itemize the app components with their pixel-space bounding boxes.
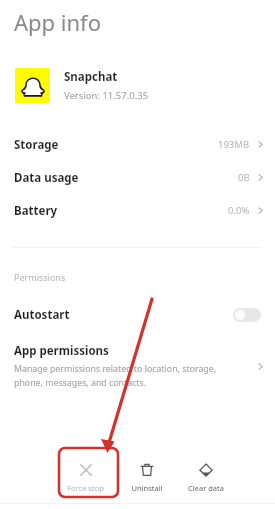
other: Force stop [78, 462, 94, 478]
staticText: App info [14, 7, 101, 37]
button[interactable]: Storage [0, 128, 275, 161]
staticText: App permissions [14, 343, 109, 359]
staticText: Clear data [188, 483, 224, 493]
staticText: Snapchat [64, 69, 118, 85]
staticText: Uninstall [131, 483, 163, 493]
staticText: Manage permissions related to location, … [14, 363, 217, 375]
staticText: Autostart [14, 307, 70, 323]
button[interactable]: Force stop [63, 460, 108, 495]
staticText: phone, messages, and contacts. [14, 377, 147, 389]
staticText: Version: 11.57.0.35 [64, 89, 149, 102]
other: Clear data [198, 462, 214, 478]
staticText: 0B [238, 171, 250, 184]
button[interactable]: Battery [0, 194, 275, 227]
staticText: Force stop [67, 483, 104, 493]
staticText: Data usage [14, 170, 79, 186]
button[interactable]: Autostart [0, 300, 275, 330]
staticText: Battery [14, 203, 58, 219]
button[interactable]: Data usage [0, 161, 275, 194]
staticText: Permissions [14, 271, 66, 283]
other: Uninstall [139, 462, 155, 478]
button[interactable]: Snapchat [0, 68, 275, 103]
staticText: Storage [14, 137, 59, 153]
button[interactable]: Toggle Autostart [233, 308, 261, 322]
staticText: 0.0% [228, 204, 250, 217]
button[interactable]: App permissions [0, 343, 275, 389]
button[interactable]: Uninstall [124, 460, 169, 495]
button[interactable]: Clear data [183, 460, 228, 495]
staticText: 193MB [218, 138, 250, 151]
